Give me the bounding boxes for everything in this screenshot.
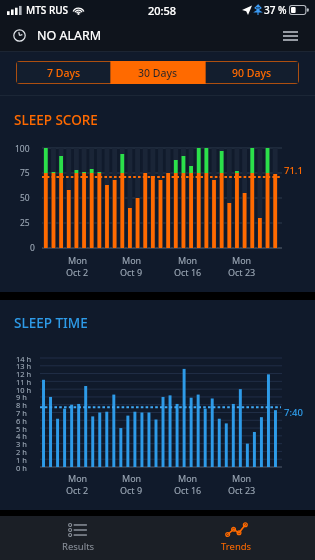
staticText: 20:58 <box>148 3 177 18</box>
staticText: Mon <box>122 472 142 484</box>
button[interactable]: Results <box>0 516 157 560</box>
staticText: Results <box>62 540 95 553</box>
staticText: Mon <box>178 472 198 484</box>
staticText: Mon <box>122 254 142 266</box>
staticText: 7 Days <box>47 66 81 80</box>
staticText: 5 h <box>16 424 27 434</box>
button[interactable]: Menu <box>278 24 302 48</box>
staticText: SLEEP TIME <box>14 314 88 332</box>
staticText: 12 h <box>16 369 32 379</box>
button[interactable]: 7 Days <box>16 61 111 84</box>
staticText: Mon <box>68 254 88 266</box>
staticText: 11 h <box>16 377 32 387</box>
staticText: 0 <box>30 242 35 254</box>
staticText: SLEEP SCORE <box>14 111 98 129</box>
staticText: 7 h <box>16 408 27 418</box>
staticText: 30 Days <box>138 66 178 80</box>
staticText: Trends <box>221 540 252 553</box>
staticText: 4 h <box>16 431 27 441</box>
staticText: Oct 16 <box>174 484 202 496</box>
staticText: Mon <box>232 472 252 484</box>
button[interactable]: Trends <box>157 516 315 560</box>
staticText: 3 h <box>16 439 27 449</box>
staticText: 7:40 <box>284 406 303 419</box>
staticText: 25 <box>20 217 30 229</box>
staticText: Oct 2 <box>66 484 89 496</box>
staticText: 90 Days <box>232 66 272 80</box>
staticText: Mon <box>178 254 198 266</box>
staticText: 100 <box>15 143 30 155</box>
staticText: NO ALARM <box>37 27 102 44</box>
staticText: 0 h <box>16 463 27 473</box>
staticText: Oct 23 <box>228 266 256 278</box>
staticText: 13 h <box>16 361 32 371</box>
staticText: MTS RUS <box>26 3 69 17</box>
staticText: Oct 2 <box>66 266 89 278</box>
staticText: 71.1 <box>284 164 303 177</box>
staticText: Mon <box>68 472 88 484</box>
staticText: 8 h <box>16 400 27 410</box>
staticText: 2 h <box>16 447 27 457</box>
staticText: 14 h <box>16 354 32 364</box>
staticText: Oct 9 <box>120 484 143 496</box>
staticText: 75 <box>20 167 30 179</box>
button[interactable]: 30 Days <box>111 61 205 84</box>
staticText: 6 h <box>16 416 27 426</box>
staticText: 10 h <box>16 385 32 395</box>
staticText: Oct 16 <box>174 266 202 278</box>
staticText: Oct 23 <box>228 484 256 496</box>
staticText: Mon <box>232 254 252 266</box>
staticText: 9 h <box>16 392 27 402</box>
staticText: 1 h <box>16 455 27 465</box>
staticText: 50 <box>20 192 30 204</box>
button[interactable]: 90 Days <box>205 61 299 84</box>
staticText: 37 % <box>264 3 287 17</box>
staticText: Oct 9 <box>120 266 143 278</box>
